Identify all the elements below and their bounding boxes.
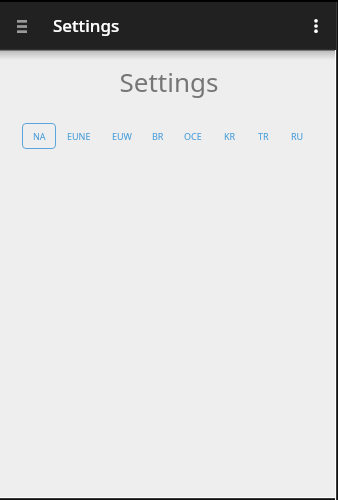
button[interactable]: EUW [101, 123, 142, 149]
staticText: OCE [184, 130, 202, 142]
button[interactable]: NA [22, 123, 56, 149]
staticText: TR [258, 130, 269, 142]
staticText: RU [291, 130, 304, 142]
button[interactable]: KR [213, 123, 246, 149]
staticText: EUW [112, 130, 132, 142]
staticText: EUNE [67, 130, 91, 142]
button[interactable]: RU [281, 123, 314, 149]
staticText: NA [33, 130, 46, 142]
staticText: Settings [53, 14, 120, 37]
button[interactable]: OCE [174, 123, 212, 149]
button[interactable]: BR [142, 123, 174, 149]
staticText: KR [224, 130, 236, 142]
staticText: BR [152, 130, 164, 142]
staticText: Settings [0, 64, 338, 99]
button[interactable]: TR [247, 123, 279, 149]
button[interactable]: Open navigation drawer [4, 8, 40, 44]
button[interactable]: More options [298, 8, 334, 44]
button[interactable]: EUNE [56, 123, 101, 149]
